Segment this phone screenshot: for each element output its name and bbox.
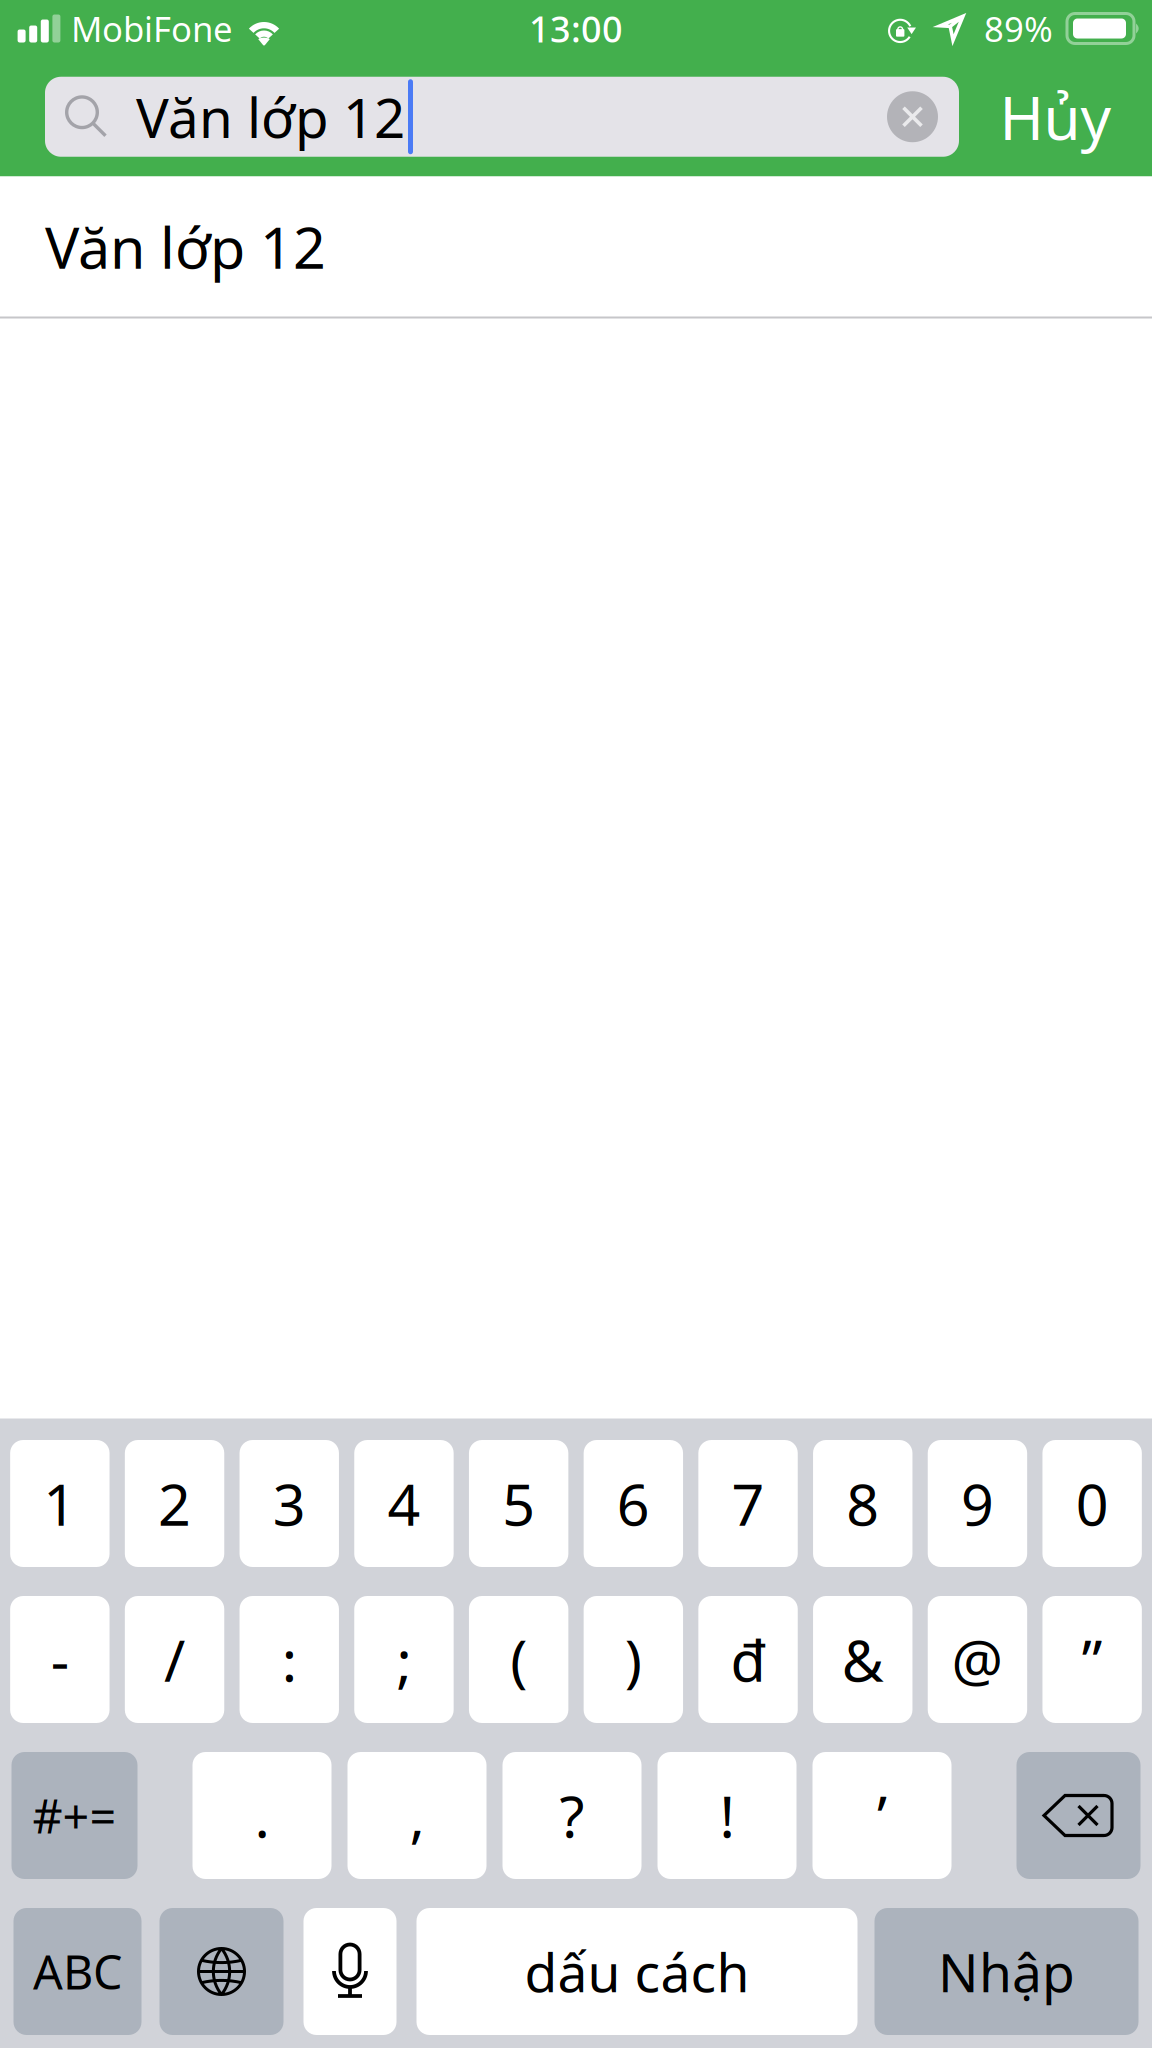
button[interactable]: 8 — [813, 1440, 912, 1567]
button[interactable]: ; — [354, 1596, 454, 1723]
staticText: dấu cách — [524, 1936, 749, 2007]
staticText: ! — [719, 1777, 734, 1853]
staticText: 6 — [617, 1465, 650, 1541]
staticText: #+= — [32, 1784, 116, 1846]
button[interactable]: dấu cách — [416, 1908, 857, 2035]
button[interactable]: Văn lớp 12 — [0, 176, 1152, 318]
staticText: ; — [396, 1621, 411, 1697]
button[interactable]: ( — [469, 1596, 568, 1723]
button[interactable]: ” — [1042, 1596, 1142, 1723]
button[interactable]: 5 — [469, 1440, 568, 1567]
staticText: 4 — [387, 1465, 420, 1541]
button[interactable]: & — [813, 1596, 912, 1723]
staticText: . — [254, 1777, 269, 1853]
staticText: , — [409, 1777, 424, 1853]
staticText: ( — [510, 1621, 527, 1697]
button[interactable]: #+= — [11, 1752, 137, 1879]
button[interactable]: đ — [698, 1596, 798, 1723]
staticText: 3 — [273, 1465, 306, 1541]
staticText: ’ — [877, 1777, 887, 1853]
button[interactable]: Next keyboard — [159, 1908, 283, 2035]
button[interactable]: ? — [502, 1752, 641, 1879]
staticText: 7 — [732, 1465, 765, 1541]
button[interactable]: 2 — [125, 1440, 224, 1567]
button[interactable]: 9 — [928, 1440, 1027, 1567]
button[interactable]: / — [125, 1596, 224, 1723]
button[interactable]: Nhập — [874, 1908, 1138, 2035]
button[interactable]: 3 — [240, 1440, 339, 1567]
staticText: ) — [625, 1621, 642, 1697]
button[interactable]: 7 — [698, 1440, 798, 1567]
staticText: & — [842, 1621, 884, 1697]
button[interactable]: ! — [657, 1752, 796, 1879]
staticText: Nhập — [938, 1936, 1075, 2007]
staticText: 13:00 — [529, 5, 623, 52]
button[interactable]: Hủy — [959, 67, 1152, 167]
staticText: @ — [951, 1621, 1003, 1697]
staticText: 2 — [158, 1465, 191, 1541]
staticText: Hủy — [999, 77, 1111, 157]
staticText: 1 — [43, 1465, 76, 1541]
staticText: 89% — [984, 5, 1053, 51]
staticText: ” — [1082, 1621, 1103, 1697]
staticText: - — [51, 1621, 69, 1697]
button[interactable]: - — [10, 1596, 110, 1723]
staticText: 9 — [961, 1465, 994, 1541]
button[interactable]: ABC — [13, 1908, 141, 2035]
button[interactable]: Clear text — [887, 91, 938, 142]
button[interactable]: Delete — [1016, 1752, 1140, 1879]
button[interactable]: , — [347, 1752, 486, 1879]
button[interactable]: : — [240, 1596, 339, 1723]
button[interactable]: 1 — [10, 1440, 110, 1567]
staticText: 5 — [502, 1465, 535, 1541]
staticText: Văn lớp 12 — [136, 80, 405, 153]
button[interactable]: . — [192, 1752, 331, 1879]
button[interactable]: ’ — [812, 1752, 951, 1879]
button[interactable]: 0 — [1042, 1440, 1142, 1567]
staticText: đ — [731, 1621, 766, 1697]
staticText: : — [282, 1621, 297, 1697]
button[interactable]: Dictate — [303, 1908, 396, 2035]
staticText: Văn lớp 12 — [45, 208, 326, 284]
staticText: ABC — [33, 1940, 122, 2002]
staticText: ? — [559, 1777, 584, 1853]
button[interactable]: 4 — [354, 1440, 454, 1567]
button[interactable]: @ — [928, 1596, 1027, 1723]
staticText: 8 — [846, 1465, 879, 1541]
staticText: 0 — [1076, 1465, 1109, 1541]
staticText: MobiFone — [71, 5, 233, 51]
button[interactable]: ) — [584, 1596, 683, 1723]
staticText: / — [164, 1621, 185, 1697]
button[interactable]: 6 — [584, 1440, 683, 1567]
